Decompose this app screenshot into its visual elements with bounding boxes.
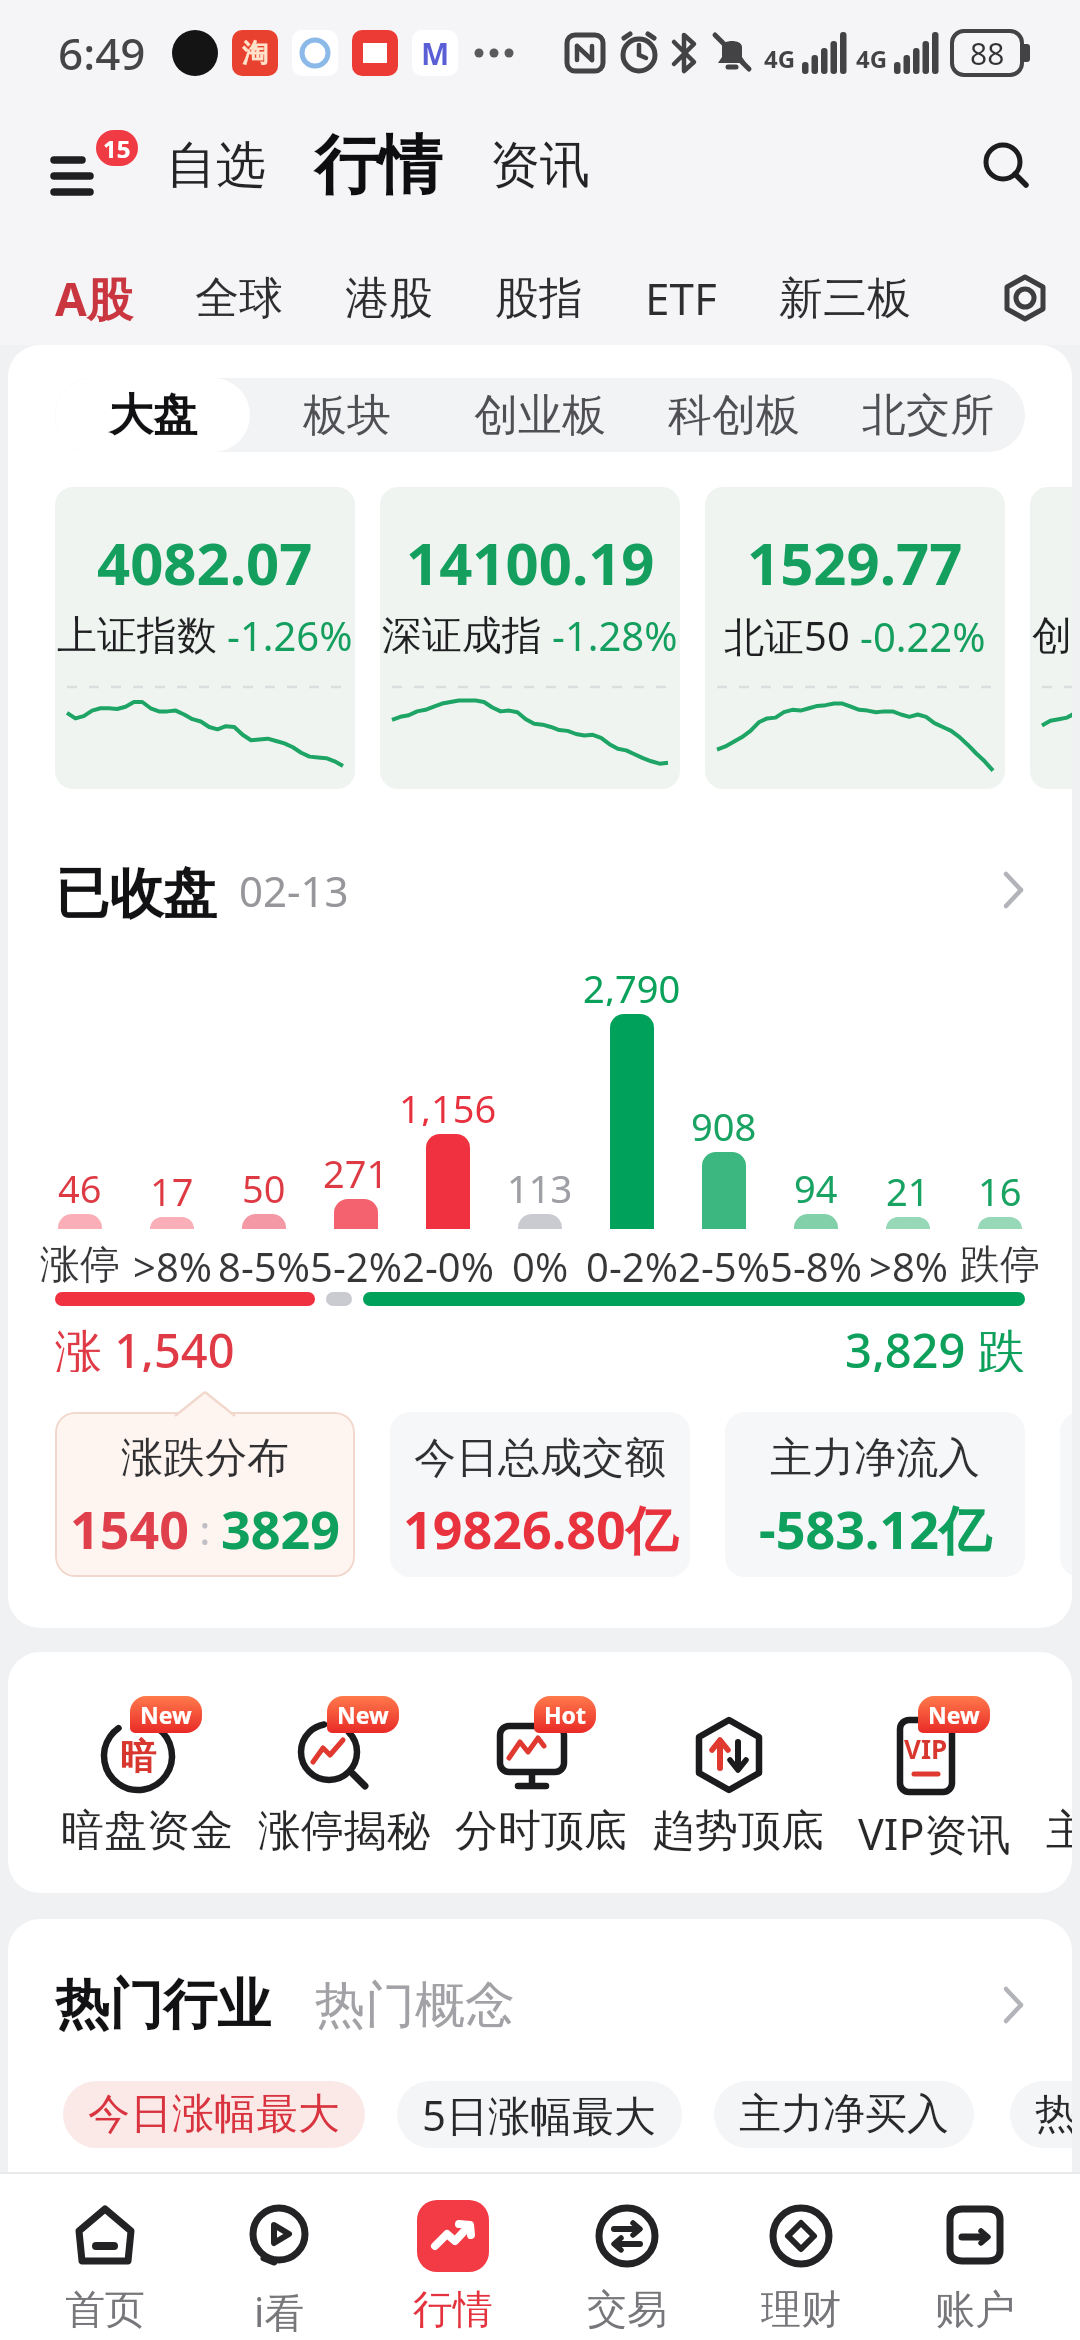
button[interactable]: 港股: [345, 271, 433, 326]
button[interactable]: 15: [52, 130, 138, 200]
button[interactable]: 271: [310, 1147, 402, 1285]
button[interactable]: 板块: [250, 378, 443, 452]
button[interactable]: A股: [55, 267, 133, 330]
staticText: 涨 1,540: [55, 1318, 235, 1372]
button[interactable]: New: [245, 1696, 442, 1858]
staticText: 热门行业: [55, 1971, 271, 2039]
button[interactable]: 14100.19: [380, 487, 680, 789]
staticText: >8%: [133, 1239, 212, 1285]
staticText: -0.22%: [860, 609, 986, 663]
staticText: New: [140, 1699, 192, 1730]
staticText: 理财: [761, 2284, 841, 2334]
staticText: i看: [254, 2284, 305, 2339]
staticText: 19826.80亿: [403, 1493, 678, 1564]
button[interactable]: 113: [494, 1162, 586, 1285]
staticText: 板块: [303, 388, 391, 443]
staticText: New: [928, 1699, 980, 1730]
button[interactable]: [980, 139, 1032, 191]
staticText: 首页: [65, 2284, 145, 2334]
staticText: 创业板: [474, 388, 606, 443]
staticText: 908: [691, 1100, 757, 1144]
button[interactable]: 50: [218, 1162, 310, 1285]
button[interactable]: 热点追踪: [1010, 2081, 1072, 2148]
button[interactable]: 交易: [540, 2174, 714, 2340]
staticText: 跌停: [960, 1239, 1040, 1285]
staticText: 21: [886, 1165, 930, 1209]
staticText: 113: [507, 1162, 573, 1206]
button[interactable]: 理财: [714, 2174, 888, 2340]
button[interactable]: Hot: [442, 1696, 639, 1858]
button[interactable]: 股指: [495, 271, 583, 326]
staticText: 5-8%: [770, 1239, 862, 1285]
button[interactable]: 自选: [166, 134, 266, 197]
button[interactable]: 北交所: [831, 378, 1025, 452]
staticText: 分时顶底: [455, 1804, 627, 1858]
staticText: 5日涨幅最大: [422, 2086, 657, 2143]
button[interactable]: 趋势顶底: [639, 1696, 836, 1858]
staticText: 今日总成交额: [414, 1432, 666, 1485]
staticText: 50: [242, 1162, 286, 1206]
staticText: -1.28%: [552, 608, 678, 662]
staticText: 今日涨幅最大: [88, 2088, 340, 2141]
button[interactable]: 新三板: [779, 271, 911, 326]
staticText: >8%: [869, 1239, 948, 1285]
button[interactable]: 资讯: [490, 134, 590, 197]
button[interactable]: 1,156: [402, 1082, 494, 1285]
button[interactable]: 3287.33: [1030, 487, 1072, 789]
staticText: New: [337, 1699, 389, 1730]
staticText: 15: [103, 132, 131, 165]
staticText: 主力资金: [1046, 1804, 1072, 1858]
button[interactable]: 46: [34, 1162, 126, 1285]
staticText: 1529.77: [747, 523, 963, 602]
button[interactable]: 今日涨幅最大: [63, 2081, 365, 2148]
staticText: 2,790: [583, 962, 681, 1006]
button[interactable]: 大盘: [55, 378, 250, 452]
staticText: 深证成指: [382, 610, 542, 660]
button[interactable]: 4082.07: [55, 487, 355, 789]
button[interactable]: ETF: [645, 268, 717, 328]
button[interactable]: 今日总成交额: [390, 1412, 690, 1577]
button[interactable]: 5日涨幅最大: [397, 2081, 682, 2148]
button[interactable]: 21: [862, 1165, 954, 1285]
button[interactable]: 全球: [195, 271, 283, 326]
button[interactable]: 908: [678, 1100, 770, 1285]
button[interactable]: VIP: [836, 1696, 1033, 1863]
button[interactable]: 暗: [48, 1696, 245, 1858]
staticText: 88: [970, 33, 1005, 74]
button[interactable]: 账户: [888, 2174, 1062, 2340]
staticText: 14100.19: [406, 523, 655, 602]
button[interactable]: 行情: [366, 2174, 540, 2340]
button[interactable]: 94: [770, 1162, 862, 1285]
staticText: 6:49: [58, 23, 146, 83]
staticText: 5-2%: [310, 1239, 402, 1285]
button[interactable]: 行情: [314, 125, 442, 206]
button[interactable]: 科创板: [637, 378, 831, 452]
button[interactable]: 1529.77: [705, 487, 1005, 789]
staticText: 创业板指: [1032, 610, 1072, 660]
button[interactable]: 创业板: [443, 378, 637, 452]
button[interactable]: 热门行业: [55, 1971, 1025, 2039]
button[interactable]: 首页: [18, 2174, 192, 2340]
staticText: 暗: [120, 1734, 156, 1779]
staticText: -583.12亿: [759, 1493, 991, 1564]
staticText: 主力净流入: [770, 1432, 980, 1485]
staticText: 3,829 跌: [845, 1318, 1025, 1372]
staticText: VIP资讯: [858, 1804, 1011, 1863]
button[interactable]: 已收盘: [55, 860, 1025, 920]
staticText: 北证50: [724, 608, 850, 663]
staticText: 4082.07: [97, 523, 313, 602]
staticText: :: [189, 1502, 221, 1556]
button[interactable]: 涨跌分布: [55, 1412, 355, 1577]
button[interactable]: New: [1033, 1696, 1072, 1858]
staticText: 17: [150, 1165, 194, 1209]
button[interactable]: 17: [126, 1165, 218, 1285]
button[interactable]: [1002, 275, 1048, 321]
button[interactable]: 主力净流入: [725, 1412, 1025, 1577]
button[interactable]: 16: [954, 1165, 1046, 1285]
staticText: 02-13: [239, 862, 349, 919]
button[interactable]: i看: [192, 2174, 366, 2340]
staticText: 8-5%: [218, 1239, 310, 1285]
button[interactable]: 2,790: [586, 962, 678, 1285]
button[interactable]: 主力净买入: [714, 2081, 974, 2148]
